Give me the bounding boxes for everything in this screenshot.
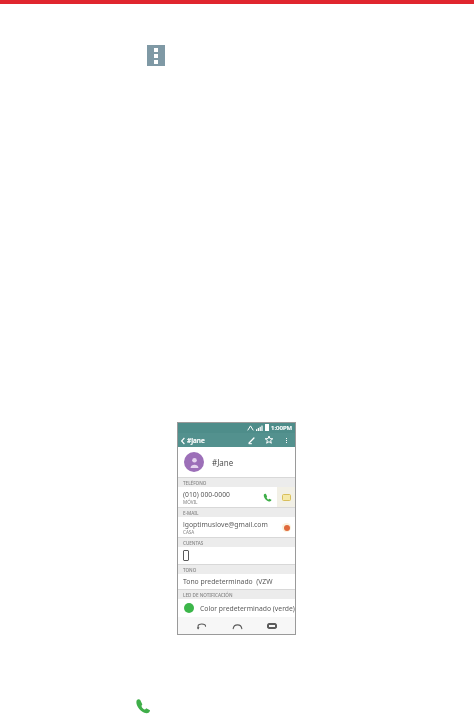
button[interactable]: #Jane bbox=[180, 436, 206, 445]
button[interactable]: Call bbox=[257, 487, 277, 507]
button[interactable]: Message bbox=[277, 487, 296, 507]
staticText: lgoptimuslove@gmail.com bbox=[183, 520, 268, 529]
staticText: CASA bbox=[183, 529, 195, 535]
button[interactable]: Recent apps bbox=[261, 617, 283, 635]
button[interactable] bbox=[177, 547, 296, 564]
button[interactable]: More options bbox=[279, 433, 293, 447]
button[interactable]: Back bbox=[190, 617, 212, 635]
staticText: 1:00PM bbox=[271, 424, 293, 432]
button[interactable]: Call bbox=[135, 698, 151, 714]
staticText: #Jane bbox=[187, 436, 205, 445]
button[interactable]: Home bbox=[226, 617, 248, 635]
staticText: LED DE NOTIFICACIÓN bbox=[183, 592, 233, 598]
button[interactable]: Color predeterminado (verde) bbox=[177, 599, 296, 617]
staticText: E-MAIL bbox=[183, 510, 199, 516]
button[interactable]: #Jane bbox=[177, 447, 296, 477]
button[interactable]: Tono predeterminado (VZW Airwaves) bbox=[177, 574, 296, 589]
staticText: TELÉFONO bbox=[183, 480, 207, 486]
button[interactable]: More options bbox=[147, 45, 165, 66]
staticText: (010) 000-0000 bbox=[183, 490, 230, 499]
staticText: Tono predeterminado (VZW Airwaves) bbox=[183, 577, 296, 586]
button[interactable]: Edit bbox=[244, 433, 258, 447]
button[interactable]: Favorite bbox=[262, 433, 276, 447]
staticText: #Jane bbox=[212, 457, 234, 468]
staticText: TONO bbox=[183, 567, 197, 573]
staticText: Color predeterminado (verde) bbox=[200, 604, 295, 613]
button[interactable]: Send email bbox=[276, 517, 296, 537]
button[interactable]: (010) 000-0000 bbox=[177, 490, 257, 505]
staticText: MÓVIL bbox=[183, 499, 198, 505]
staticText: CUENTAS bbox=[183, 540, 204, 546]
button[interactable]: lgoptimuslove@gmail.com bbox=[177, 520, 276, 535]
